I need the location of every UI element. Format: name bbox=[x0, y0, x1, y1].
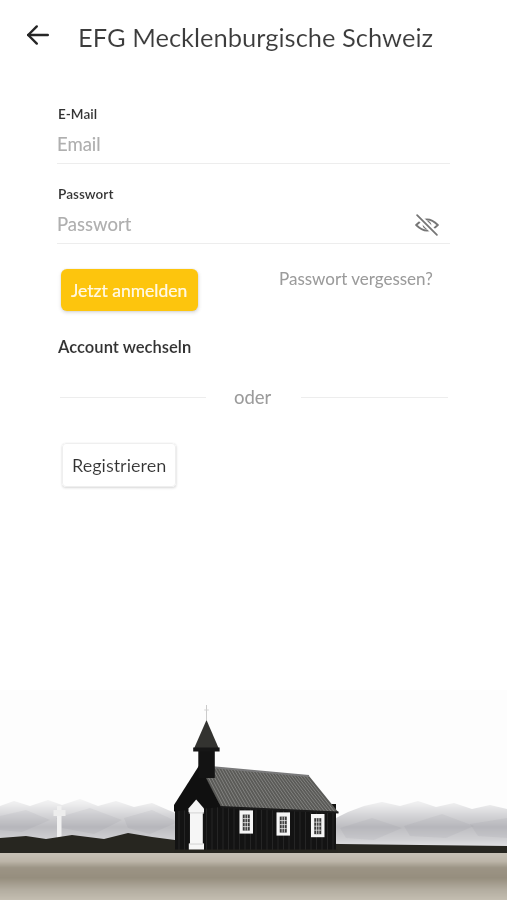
button[interactable]: Passwort vergessen? bbox=[279, 268, 433, 288]
staticText: Account wechseln bbox=[58, 337, 192, 357]
staticText: Jetzt anmelden bbox=[71, 280, 188, 301]
staticText: EFG Mecklenburgische Schweiz bbox=[78, 22, 434, 53]
staticText: oder bbox=[234, 386, 272, 408]
button[interactable]: Registrieren bbox=[62, 443, 176, 487]
staticText: Passwort vergessen? bbox=[279, 268, 433, 288]
staticText: E-Mail bbox=[58, 106, 98, 122]
button[interactable]: Jetzt anmelden bbox=[61, 269, 198, 311]
staticText: Passwort bbox=[57, 213, 132, 235]
button[interactable]: Show password bbox=[412, 210, 442, 240]
button[interactable]: Account wechseln bbox=[58, 337, 192, 357]
staticText: Passwort bbox=[58, 186, 114, 202]
button[interactable]: Back bbox=[14, 11, 62, 59]
staticText: Registrieren bbox=[72, 454, 167, 476]
staticText: Email bbox=[57, 133, 101, 155]
